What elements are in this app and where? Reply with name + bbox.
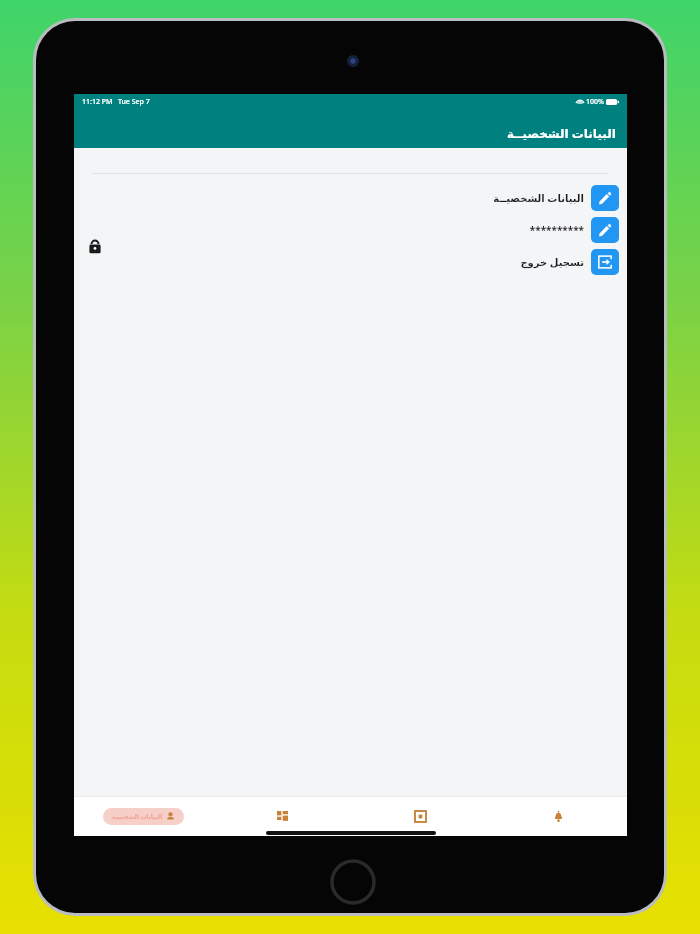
staticText: البيانات الشخصيــة xyxy=(507,125,616,141)
button[interactable]: Dashboard xyxy=(213,796,351,836)
button[interactable]: البيانات الشخصيــة xyxy=(74,185,619,211)
button[interactable]: البيانات الشخصية xyxy=(103,808,184,825)
staticText: 100% xyxy=(586,97,604,107)
staticText: 11:12 PM Tue Sep 7 xyxy=(82,97,150,107)
button[interactable]: Settings xyxy=(351,796,489,836)
button[interactable]: Lock xyxy=(84,236,106,258)
button[interactable]: تسجيل خروج xyxy=(74,249,619,275)
staticText: تسجيل خروج xyxy=(520,255,584,269)
staticText: ********** xyxy=(529,223,584,237)
staticText: البيانات الشخصية xyxy=(112,813,163,821)
button[interactable]: Notifications xyxy=(489,796,627,836)
button[interactable]: ********** xyxy=(74,217,619,243)
staticText: البيانات الشخصيــة xyxy=(493,191,584,205)
